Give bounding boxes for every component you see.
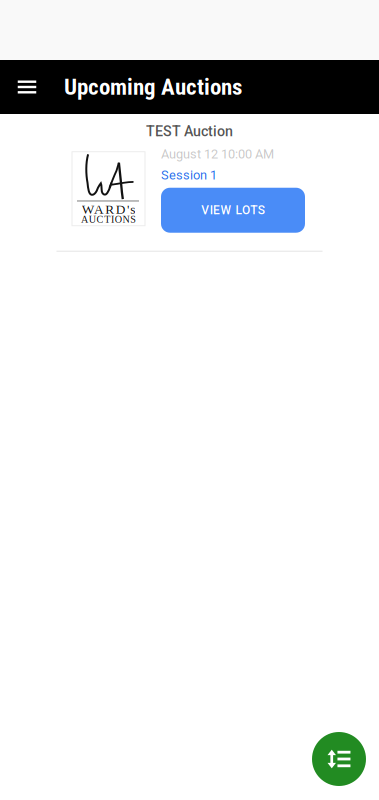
staticText: Session 1 bbox=[161, 168, 217, 183]
staticText: VIEW LOTS bbox=[201, 203, 265, 217]
button[interactable]: Menu bbox=[0, 60, 54, 114]
button[interactable]: Sort bbox=[312, 732, 366, 786]
button[interactable]: VIEW LOTS bbox=[161, 188, 305, 233]
staticText: AUCTIONS bbox=[81, 214, 136, 225]
staticText: TEST Auction bbox=[146, 123, 233, 140]
staticText: Upcoming Auctions bbox=[64, 74, 242, 100]
staticText: August 12 10:00 AM bbox=[161, 147, 274, 162]
staticText: WARD's bbox=[82, 202, 135, 217]
